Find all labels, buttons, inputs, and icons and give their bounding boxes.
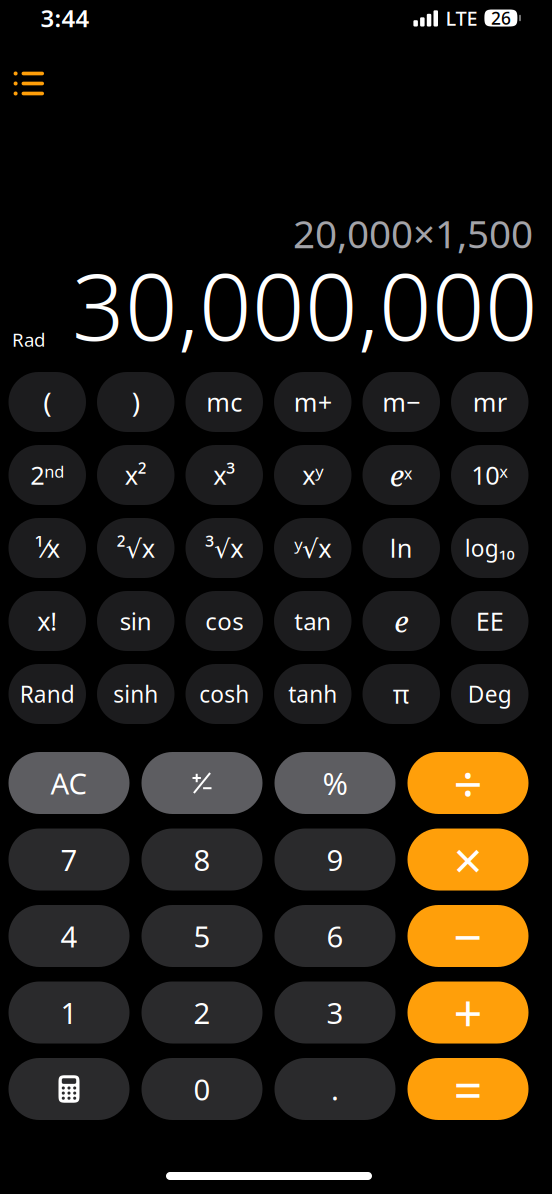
staticText: +: [453, 979, 482, 1046]
button[interactable]: eˣ: [362, 445, 440, 505]
staticText: ÷: [453, 749, 482, 817]
button[interactable]: sin: [97, 591, 174, 651]
staticText: m−: [382, 385, 420, 419]
staticText: 3:44: [40, 2, 89, 34]
staticText: ²√x: [117, 531, 155, 565]
button[interactable]: mr: [451, 372, 528, 432]
staticText: 4: [60, 916, 77, 955]
button[interactable]: 6: [274, 905, 395, 967]
button[interactable]: Plus or minus: [141, 752, 262, 814]
staticText: m+: [294, 385, 332, 419]
button[interactable]: ³√x: [185, 518, 263, 578]
staticText: Rad: [12, 327, 45, 352]
button[interactable]: ²√x: [97, 518, 174, 578]
staticText: x²: [125, 458, 147, 492]
staticText: ×: [453, 826, 482, 893]
button[interactable]: 3: [274, 981, 395, 1043]
button[interactable]: cosh: [185, 664, 263, 724]
button[interactable]: ): [97, 372, 174, 432]
button[interactable]: (: [8, 372, 86, 432]
button[interactable]: 7: [8, 828, 129, 890]
staticText: tanh: [288, 679, 337, 709]
staticText: 9: [326, 840, 343, 879]
staticText: 7: [60, 840, 77, 879]
staticText: Rand: [20, 679, 75, 709]
staticText: log₁₀: [465, 533, 515, 563]
button[interactable]: Menu: [0, 72, 44, 95]
button[interactable]: 9: [274, 828, 395, 890]
button[interactable]: 2ⁿᵈ: [8, 445, 86, 505]
button[interactable]: xʸ: [274, 445, 351, 505]
staticText: mr: [473, 385, 507, 419]
button[interactable]: ln: [362, 518, 440, 578]
button[interactable]: tan: [274, 591, 351, 651]
button[interactable]: ʸ√x: [274, 518, 351, 578]
staticText: −: [453, 902, 482, 970]
staticText: EE: [476, 604, 504, 638]
staticText: .: [331, 1069, 339, 1108]
button[interactable]: log₁₀: [451, 518, 528, 578]
staticText: 26: [491, 6, 511, 29]
staticText: π: [393, 677, 410, 711]
staticText: sin: [120, 605, 152, 637]
button[interactable]: AC: [8, 752, 129, 814]
button[interactable]: %: [274, 752, 395, 814]
staticText: 2ⁿᵈ: [30, 458, 64, 492]
button[interactable]: Rand: [8, 664, 86, 724]
staticText: =: [453, 1055, 482, 1123]
button[interactable]: ×: [407, 828, 528, 890]
button[interactable]: 8: [141, 828, 262, 890]
staticText: (: [43, 383, 51, 421]
button[interactable]: sinh: [97, 664, 174, 724]
staticText: 0: [193, 1069, 210, 1108]
button[interactable]: cos: [185, 591, 263, 651]
button[interactable]: 0: [141, 1058, 262, 1120]
button[interactable]: Deg: [451, 664, 528, 724]
button[interactable]: x²: [97, 445, 174, 505]
staticText: cos: [205, 605, 243, 637]
staticText: 30,000,000: [72, 244, 538, 366]
button[interactable]: x³: [185, 445, 263, 505]
button[interactable]: e: [362, 591, 440, 651]
button[interactable]: =: [407, 1058, 528, 1120]
button[interactable]: .: [274, 1058, 395, 1120]
staticText: eˣ: [390, 455, 413, 494]
staticText: mc: [206, 385, 242, 419]
staticText: 2: [193, 993, 210, 1032]
staticText: ): [132, 383, 140, 421]
staticText: 5: [193, 916, 210, 955]
button[interactable]: EE: [451, 591, 528, 651]
staticText: 1: [60, 993, 77, 1032]
button[interactable]: +: [407, 981, 528, 1043]
staticText: ¹⁄x: [35, 531, 60, 565]
button[interactable]: ¹⁄x: [8, 518, 86, 578]
button[interactable]: 1: [8, 981, 129, 1043]
staticText: 10ˣ: [471, 458, 508, 492]
staticText: LTE: [445, 5, 477, 31]
staticText: sinh: [113, 679, 158, 709]
button[interactable]: x!: [8, 591, 86, 651]
button[interactable]: −: [407, 905, 528, 967]
staticText: x!: [37, 604, 57, 638]
button[interactable]: mc: [185, 372, 263, 432]
button[interactable]: tanh: [274, 664, 351, 724]
staticText: cosh: [199, 679, 249, 709]
staticText: 20,000×1,500: [293, 208, 533, 259]
button[interactable]: 5: [141, 905, 262, 967]
staticText: ³√x: [205, 531, 243, 565]
button[interactable]: π: [362, 664, 440, 724]
staticText: x³: [213, 458, 235, 492]
staticText: tan: [294, 605, 331, 637]
button[interactable]: 10ˣ: [451, 445, 528, 505]
staticText: 3: [326, 993, 343, 1032]
staticText: ln: [390, 531, 413, 565]
button[interactable]: 4: [8, 905, 129, 967]
staticText: AC: [50, 763, 87, 802]
button[interactable]: m−: [362, 372, 440, 432]
button[interactable]: Basic calculator: [8, 1058, 129, 1120]
button[interactable]: 2: [141, 981, 262, 1043]
button[interactable]: ÷: [407, 752, 528, 814]
staticText: xʸ: [302, 458, 323, 492]
button[interactable]: m+: [274, 372, 351, 432]
staticText: ʸ√x: [294, 531, 331, 565]
